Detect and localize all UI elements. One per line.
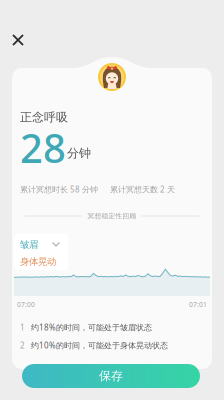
staticText: 约18%的时间，可能处于皱眉状态 <box>31 322 152 333</box>
staticText: 皱眉 <box>20 239 38 250</box>
staticText: 身体晃动 <box>20 256 56 267</box>
button[interactable]: 皱眉 <box>14 234 68 252</box>
staticText: 07:00 <box>17 300 35 309</box>
staticText: 28 <box>20 121 66 174</box>
staticText: 07:01 <box>189 300 207 309</box>
staticText: 约10%的时间，可能处于身体晃动状态 <box>31 340 168 351</box>
staticText: 正念呼吸 <box>20 110 68 125</box>
staticText: 保存 <box>99 369 123 383</box>
staticText: 累计冥想天数 2 天 <box>110 184 175 195</box>
button[interactable]: Close <box>3 25 33 55</box>
staticText: 冥想稳定性回顾 <box>87 212 136 220</box>
staticText: 分钟 <box>67 146 91 161</box>
staticText: 2 <box>20 340 25 351</box>
button[interactable]: 保存 <box>22 364 200 388</box>
staticText: 累计冥想时长 58 分钟 <box>20 184 98 195</box>
staticText: 1 <box>20 322 25 333</box>
button[interactable]: 身体晃动 <box>14 252 68 270</box>
